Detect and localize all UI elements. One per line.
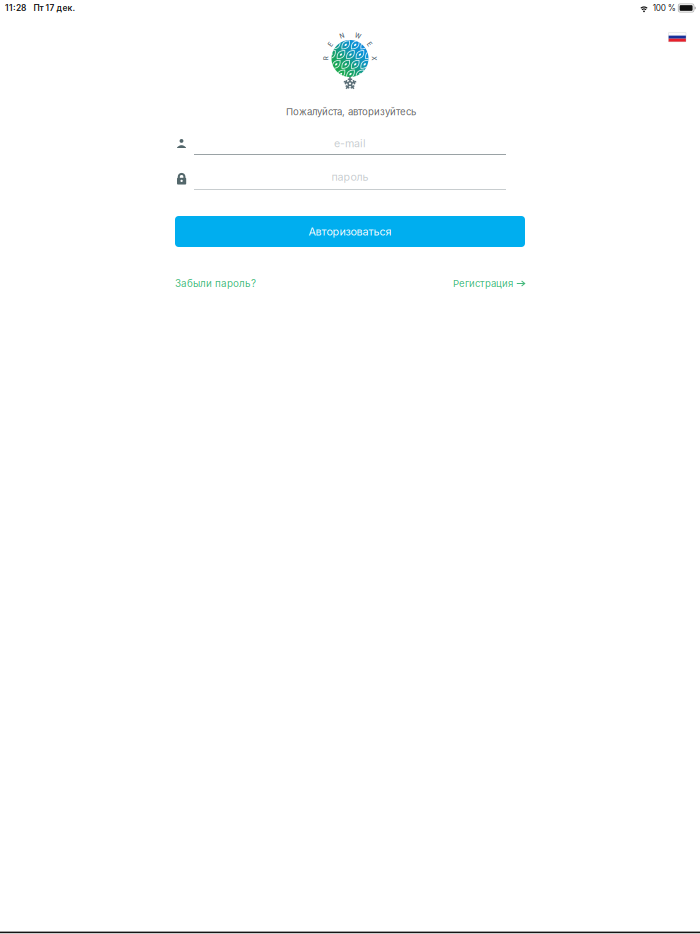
- staticText: пароль: [331, 170, 368, 183]
- staticText: e-mail: [334, 137, 366, 150]
- staticText: Авторизоваться: [308, 225, 391, 238]
- staticText: Регистрация: [453, 278, 513, 289]
- staticText: Пожалуйста, авторизуйтесь: [286, 106, 416, 118]
- button[interactable]: Забыли пароль?: [175, 277, 256, 290]
- staticText: Забыли пароль?: [175, 277, 256, 289]
- staticText: 100 %: [653, 3, 676, 13]
- button[interactable]: Авторизоваться: [175, 216, 525, 247]
- button[interactable]: Регистрация: [453, 277, 525, 290]
- staticText: 11:28: [5, 3, 26, 13]
- button[interactable]: Сменить язык: [668, 32, 686, 42]
- staticText: Пт 17 дек.: [33, 3, 75, 13]
